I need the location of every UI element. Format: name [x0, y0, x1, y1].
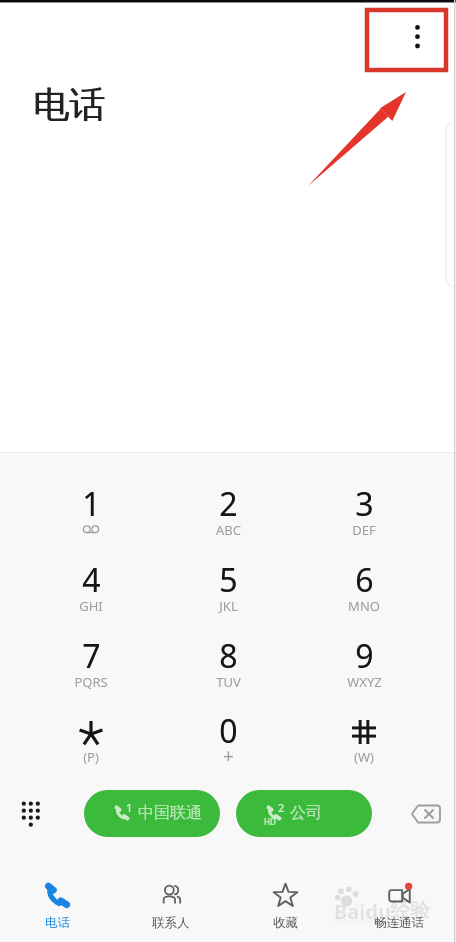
- staticText: GHI: [79, 597, 103, 615]
- staticText: (P): [83, 748, 99, 766]
- button[interactable]: 8: [167, 630, 289, 706]
- staticText: 2: [219, 482, 238, 526]
- staticText: DEF: [352, 521, 376, 539]
- staticText: jingyan.baidu.com: [335, 916, 396, 926]
- button[interactable]: 7: [30, 630, 152, 706]
- button[interactable]: 1: [30, 478, 152, 554]
- button[interactable]: 2: [236, 790, 372, 837]
- staticText: 0: [219, 709, 238, 753]
- button[interactable]: 6: [303, 554, 425, 630]
- staticText: 2: [278, 800, 285, 815]
- staticText: 电话: [34, 82, 106, 127]
- staticText: 收藏: [273, 915, 298, 931]
- staticText: 1: [126, 800, 133, 815]
- button[interactable]: 联系人: [114, 857, 228, 942]
- staticText: +: [223, 743, 234, 769]
- button[interactable]: 2: [167, 478, 289, 554]
- staticText: 3: [355, 482, 374, 526]
- staticText: WXYZ: [347, 673, 382, 691]
- button[interactable]: (P): [30, 705, 152, 781]
- staticText: 电话: [33, 82, 105, 127]
- staticText: JKL: [219, 597, 238, 615]
- staticText: MNO: [348, 597, 380, 615]
- button[interactable]: (W): [303, 705, 425, 781]
- staticText: 2: [219, 482, 238, 526]
- staticText: 8: [219, 634, 238, 678]
- staticText: 畅连通话: [374, 915, 424, 931]
- button[interactable]: 畅连通话: [342, 857, 456, 942]
- button[interactable]: Delete: [405, 798, 447, 830]
- staticText: 联系人: [152, 915, 190, 931]
- button[interactable]: Keypad: [14, 796, 48, 832]
- staticText: 7: [82, 634, 101, 678]
- staticText: TUV: [216, 673, 241, 691]
- staticText: 9: [355, 634, 374, 678]
- button[interactable]: More options: [399, 17, 436, 56]
- staticText: ABC: [216, 521, 241, 539]
- staticText: 7: [82, 634, 101, 678]
- staticText: 中国联通: [138, 803, 202, 823]
- staticText: 3: [355, 482, 374, 526]
- button[interactable]: 3: [303, 478, 425, 554]
- button[interactable]: 9: [303, 630, 425, 706]
- staticText: 1: [82, 482, 101, 526]
- button[interactable]: 1: [84, 790, 220, 837]
- staticText: 4: [82, 558, 101, 602]
- staticText: 5: [219, 558, 238, 602]
- staticText: (W): [354, 748, 374, 766]
- staticText: 0: [219, 709, 238, 753]
- staticText: PQRS: [74, 673, 108, 691]
- staticText: 经验: [390, 898, 430, 923]
- staticText: 1: [82, 482, 101, 526]
- staticText: 8: [219, 634, 238, 678]
- button[interactable]: 0: [167, 705, 289, 781]
- button[interactable]: 4: [30, 554, 152, 630]
- button[interactable]: 5: [167, 554, 289, 630]
- staticText: Baidu: [334, 898, 391, 925]
- staticText: 5: [219, 558, 238, 602]
- staticText: 6: [355, 558, 374, 602]
- staticText: 4: [82, 558, 101, 602]
- button[interactable]: 电话: [0, 857, 114, 942]
- staticText: 6: [355, 558, 374, 602]
- staticText: 公司: [290, 803, 322, 823]
- staticText: 9: [355, 634, 374, 678]
- staticText: HD: [264, 816, 276, 827]
- staticText: 电话: [45, 915, 70, 931]
- button[interactable]: 收藏: [228, 857, 342, 942]
